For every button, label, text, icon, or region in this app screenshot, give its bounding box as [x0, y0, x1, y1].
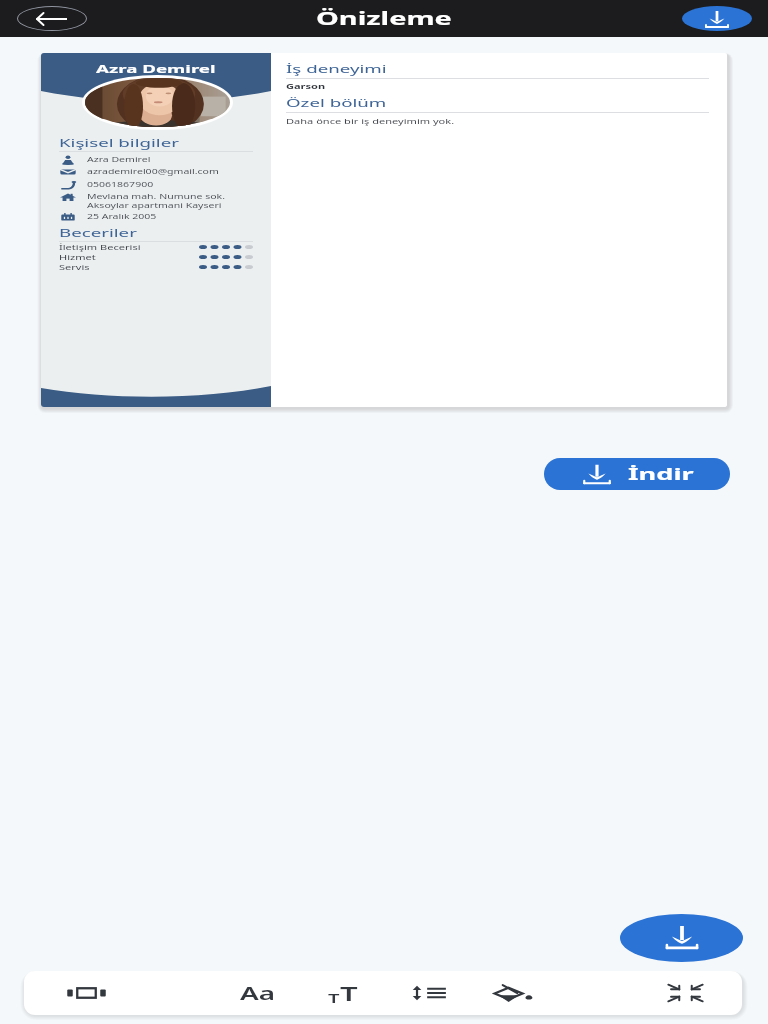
- staticText: İndir: [628, 463, 694, 485]
- button[interactable]: Fit to screen: [661, 971, 709, 1015]
- staticText: T: [328, 989, 340, 1007]
- button[interactable]: Download: [620, 914, 743, 962]
- staticText: Kişisel bilgiler: [59, 135, 180, 150]
- staticText: Beceriler: [59, 225, 137, 240]
- button[interactable]: Download: [682, 6, 752, 31]
- staticText: Daha önce bir iş deneyimim yok.: [286, 117, 454, 126]
- button[interactable]: Font: [233, 971, 281, 1015]
- staticText: Aa: [240, 981, 276, 1006]
- button[interactable]: Line spacing: [405, 971, 453, 1015]
- staticText: Garson: [286, 82, 327, 91]
- staticText: İletişim Becerisi: [59, 243, 141, 252]
- staticText: T: [340, 980, 359, 1007]
- staticText: Önizleme: [316, 7, 452, 30]
- button[interactable]: Text size: [319, 971, 367, 1015]
- staticText: Hizmet: [59, 253, 96, 262]
- staticText: İş deneyimi: [286, 61, 388, 76]
- staticText: azrademirel00@gmail.com: [87, 167, 220, 175]
- staticText: Azra Demirel: [96, 61, 217, 76]
- staticText: 25 Aralık 2005: [87, 212, 157, 220]
- button[interactable]: Margins: [62, 971, 110, 1015]
- staticText: Mevlana mah. Numune sok. Aksoylar apartm…: [87, 192, 226, 210]
- button[interactable]: Fill color: [489, 971, 537, 1015]
- staticText: Azra Demirel: [87, 155, 152, 163]
- staticText: Özel bölüm: [286, 95, 388, 110]
- button[interactable]: Back: [17, 6, 87, 31]
- staticText: 05061867900: [87, 180, 153, 188]
- button[interactable]: İndir: [544, 458, 730, 490]
- staticText: Servis: [59, 263, 91, 272]
